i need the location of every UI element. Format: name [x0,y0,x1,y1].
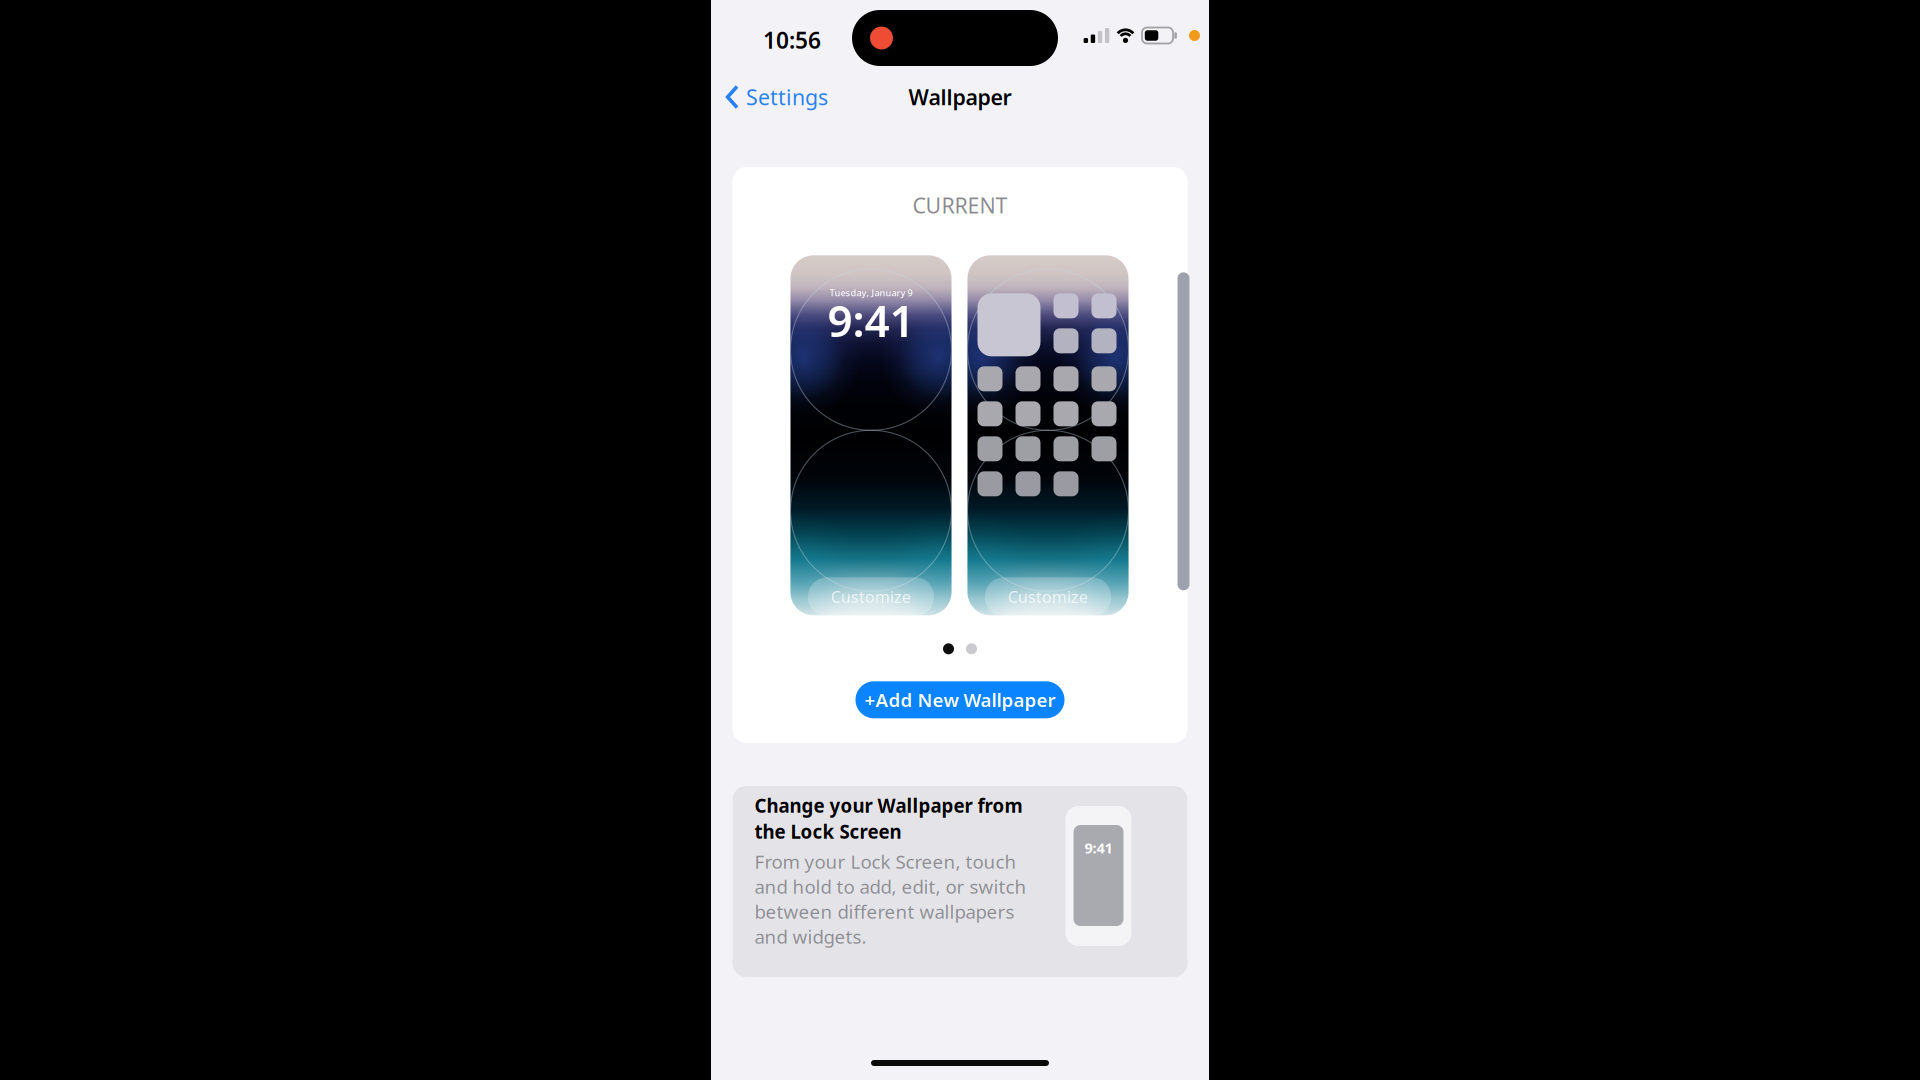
staticText: Settings [746,83,828,111]
staticText: and hold to add, edit, or switch [754,874,1026,899]
staticText: between different wallpapers [754,899,1014,924]
staticText: and widgets. [754,924,866,949]
staticText: +Add New Wallpaper [864,687,1055,712]
staticText: Customize [1008,586,1088,607]
staticText: 9:41 [1084,838,1112,857]
staticText: 9:41 [827,291,914,349]
staticText: Customize [831,586,911,607]
button[interactable]: +Add New Wallpaper [855,681,1064,718]
button[interactable]: Tuesday, January 9 [790,255,951,615]
button[interactable]: Settings [711,75,828,119]
staticText: CURRENT [912,191,1007,219]
staticText: Tuesday, January 9 [829,286,912,299]
button[interactable]: Customize [967,255,1128,615]
staticText: 10:56 [763,25,821,55]
staticText: the Lock Screen [754,819,901,844]
staticText: Wallpaper [908,83,1011,111]
staticText: Change your Wallpaper from [754,793,1022,818]
staticText: From your Lock Screen, touch [754,849,1016,874]
